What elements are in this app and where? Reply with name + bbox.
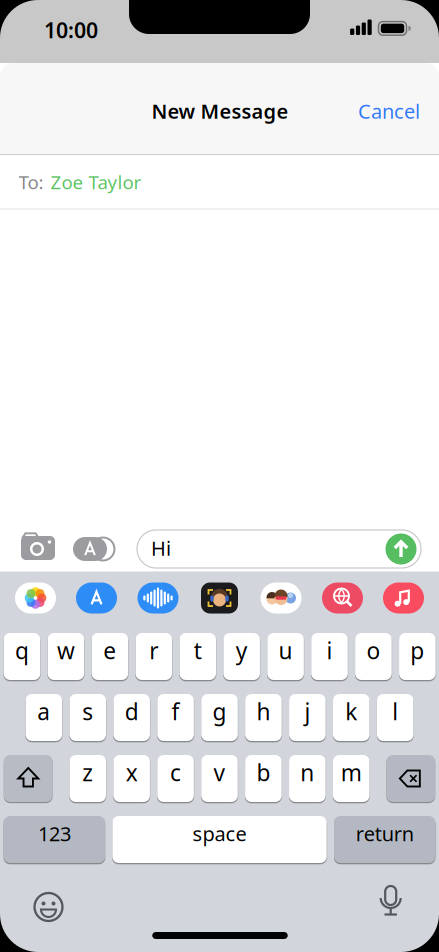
button[interactable]: [4, 755, 53, 802]
button[interactable]: [383, 582, 424, 613]
button[interactable]: f: [157, 694, 194, 741]
button[interactable]: [76, 582, 117, 613]
staticText: q: [15, 635, 29, 665]
staticText: r: [149, 635, 158, 665]
button[interactable]: k: [333, 694, 370, 741]
button[interactable]: [73, 531, 117, 567]
button[interactable]: r: [135, 633, 172, 680]
button[interactable]: 123: [4, 816, 105, 863]
staticText: p: [410, 635, 424, 665]
button[interactable]: h: [245, 694, 282, 741]
staticText: d: [125, 696, 139, 726]
staticText: s: [82, 696, 93, 726]
staticText: t: [194, 635, 202, 665]
staticText: Zoe Taylor: [50, 170, 141, 194]
staticText: space: [192, 820, 246, 847]
button[interactable]: To:: [0, 155, 439, 209]
button[interactable]: [260, 582, 301, 613]
staticText: f: [172, 696, 180, 726]
button[interactable]: m: [333, 755, 370, 802]
staticText: New Message: [151, 98, 288, 124]
button[interactable]: return: [334, 816, 435, 863]
staticText: w: [57, 635, 75, 665]
button[interactable]: [371, 885, 411, 925]
button[interactable]: c: [157, 755, 194, 802]
button[interactable]: z: [69, 755, 106, 802]
staticText: k: [345, 696, 357, 726]
button[interactable]: [137, 582, 178, 613]
button[interactable]: g: [201, 694, 238, 741]
button[interactable]: o: [355, 633, 392, 680]
button[interactable]: [385, 533, 416, 564]
button[interactable]: [322, 582, 363, 613]
staticText: v: [213, 757, 225, 787]
button[interactable]: y: [223, 633, 260, 680]
button[interactable]: w: [48, 633, 84, 680]
staticText: c: [170, 757, 181, 787]
button[interactable]: j: [289, 694, 326, 741]
staticText: return: [356, 820, 414, 847]
staticText: e: [103, 635, 116, 665]
button[interactable]: s: [69, 694, 106, 741]
button[interactable]: p: [399, 633, 436, 680]
staticText: o: [366, 635, 380, 665]
button[interactable]: d: [113, 694, 150, 741]
button[interactable]: l: [377, 694, 413, 741]
button[interactable]: Cancel: [358, 98, 420, 124]
button[interactable]: n: [289, 755, 326, 802]
button[interactable]: b: [245, 755, 282, 802]
button[interactable]: [386, 755, 435, 802]
staticText: b: [256, 757, 270, 787]
button[interactable]: [28, 887, 68, 927]
staticText: 10:00: [44, 16, 98, 44]
staticText: 123: [38, 820, 71, 847]
button[interactable]: [201, 582, 238, 613]
button[interactable]: [15, 582, 56, 613]
button[interactable]: v: [201, 755, 238, 802]
staticText: To:: [18, 170, 43, 194]
staticText: a: [37, 696, 50, 726]
staticText: j: [304, 696, 310, 726]
button[interactable]: q: [4, 633, 40, 680]
staticText: m: [341, 757, 362, 787]
staticText: x: [126, 757, 138, 787]
button[interactable]: Hi: [137, 530, 421, 568]
staticText: z: [82, 757, 93, 787]
staticText: Hi: [151, 535, 171, 561]
staticText: g: [212, 696, 226, 726]
staticText: n: [300, 757, 314, 787]
button[interactable]: t: [179, 633, 216, 680]
button[interactable]: e: [92, 633, 128, 680]
button[interactable]: space: [112, 816, 327, 863]
button[interactable]: a: [25, 694, 62, 741]
staticText: y: [236, 635, 248, 665]
button[interactable]: x: [113, 755, 150, 802]
button[interactable]: [16, 530, 60, 566]
staticText: i: [326, 635, 332, 665]
staticText: h: [256, 696, 270, 726]
button[interactable]: i: [311, 633, 348, 680]
staticText: Cancel: [358, 98, 420, 124]
staticText: l: [392, 696, 398, 726]
button[interactable]: u: [267, 633, 304, 680]
staticText: u: [279, 635, 293, 665]
